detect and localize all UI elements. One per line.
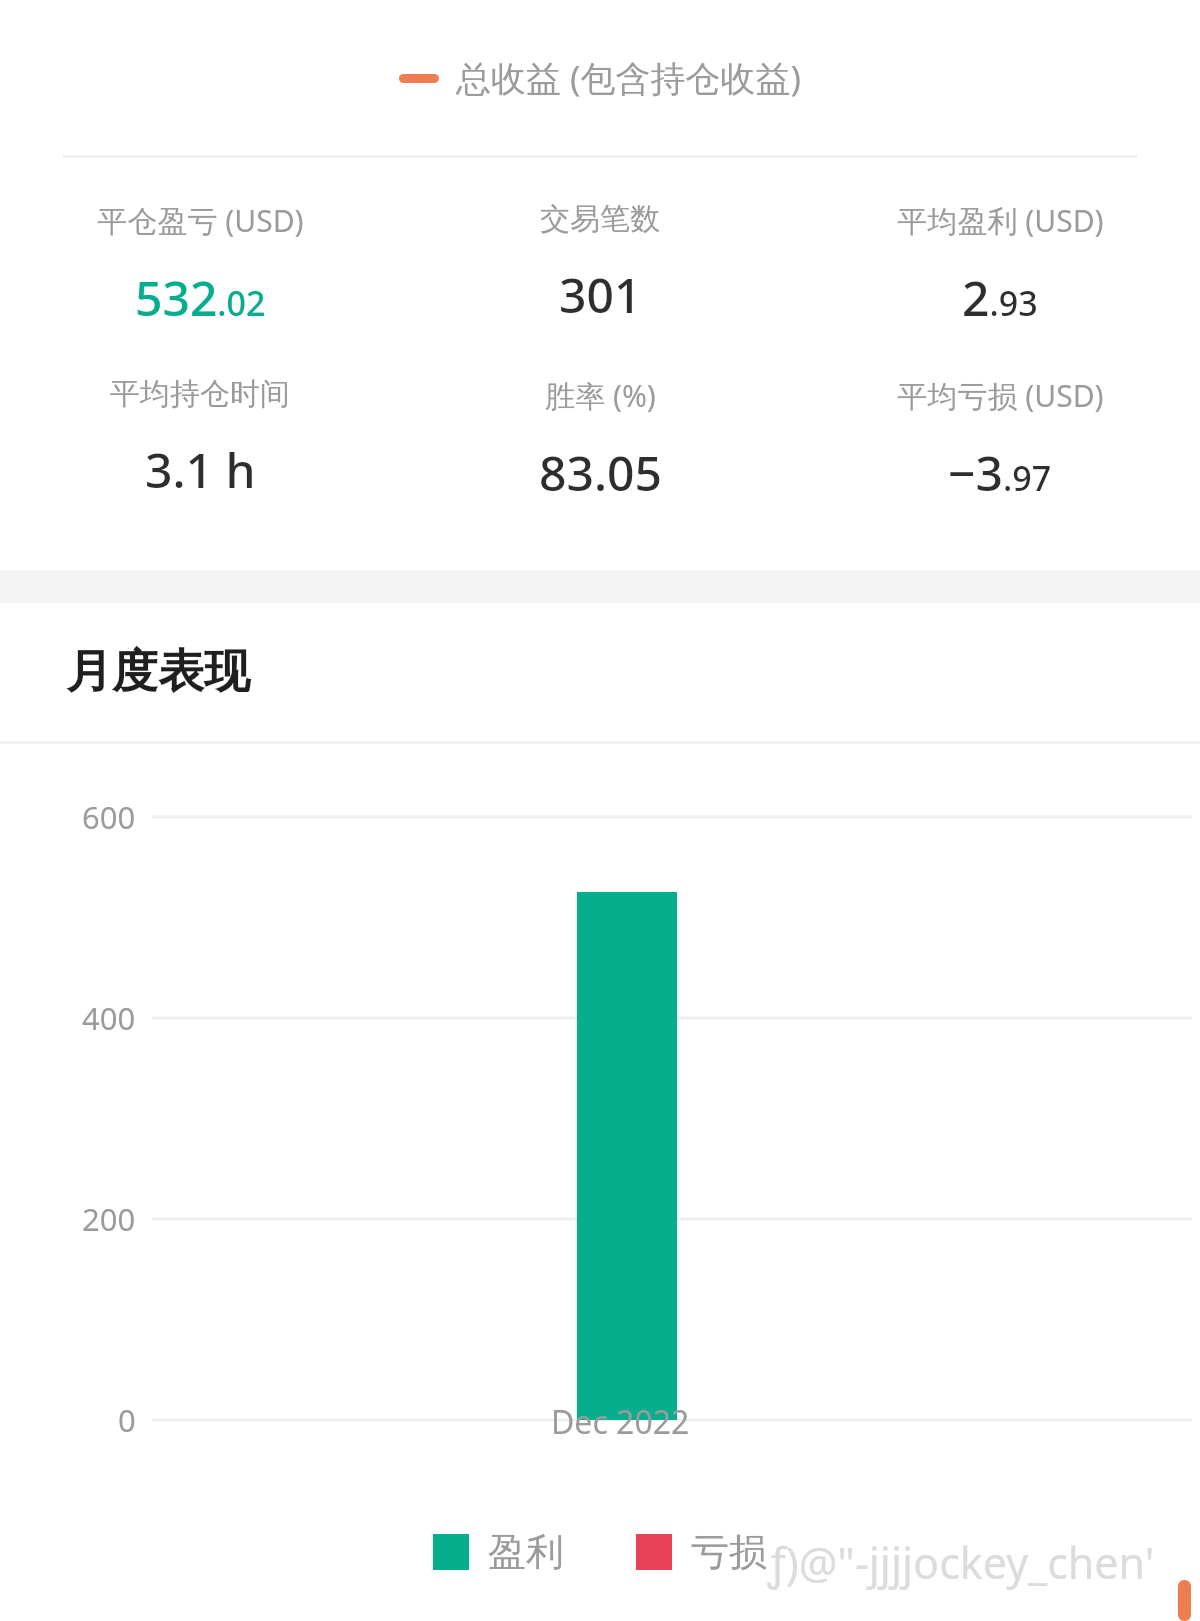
staticText: ƒ)@"-jjjjockey_chen' [768,1533,1155,1592]
staticText: 胜率 (%) [545,375,656,416]
button[interactable]: 平均亏损 (USD) [800,375,1200,505]
staticText: 0 [118,1399,136,1441]
staticText: 平均盈利 (USD) [897,200,1104,241]
staticText: 200 [82,1198,136,1240]
button[interactable]: 亏损 [636,1528,767,1576]
staticText: 400 [82,997,136,1039]
staticText: 532.02 [135,265,266,330]
staticText: 月度表现 [66,643,250,701]
button[interactable]: 月度表现 [0,603,1200,741]
staticText: −3.97 [948,440,1052,505]
staticText: Dec 2022 [551,1400,690,1444]
staticText: 平均亏损 (USD) [897,375,1104,416]
staticText: 亏损 [691,1528,767,1576]
button[interactable]: 平均盈利 (USD) [800,200,1200,330]
staticText: 600 [82,796,136,838]
staticText: 平仓盈亏 (USD) [97,200,304,241]
staticText: 交易笔数 [540,200,660,238]
button[interactable]: 总收益 (包含持仓收益) [0,0,1200,156]
staticText: 2.93 [962,265,1038,330]
button[interactable]: 平均持仓时间 [0,375,400,502]
staticText: 83.05 [539,440,662,505]
staticText: 301 [559,262,642,327]
staticText: 总收益 (包含持仓收益) [456,54,802,102]
button[interactable]: 盈利 [433,1528,564,1576]
button[interactable]: 胜率 (%) [400,375,800,505]
button[interactable]: 平仓盈亏 (USD) [0,200,400,330]
button[interactable]: 交易笔数 [400,200,800,327]
staticText: 3.1 h [145,437,256,502]
staticText: 盈利 [488,1528,564,1576]
staticText: 平均持仓时间 [110,375,290,413]
